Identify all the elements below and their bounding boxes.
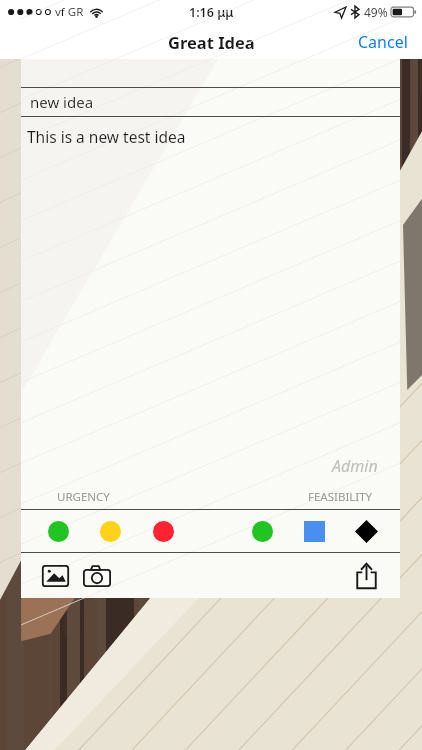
button[interactable]: Take picture <box>77 556 117 596</box>
staticText: Admin <box>332 455 378 477</box>
staticText: URGENCY <box>57 489 110 505</box>
button[interactable]: Add photo <box>35 556 75 596</box>
button[interactable]: Feasibility easy <box>246 515 278 547</box>
staticText: vf GR <box>55 4 84 20</box>
button[interactable]: Share <box>346 556 386 596</box>
button[interactable]: Cancel <box>344 25 422 59</box>
staticText: Cancel <box>358 31 408 53</box>
button[interactable]: Urgency medium <box>94 515 126 547</box>
button[interactable]: Feasibility medium <box>298 515 330 547</box>
staticText: Great Idea <box>168 31 255 53</box>
button[interactable]: new idea <box>21 88 400 116</box>
staticText: new idea <box>30 92 94 112</box>
button[interactable]: Urgency high <box>42 515 74 547</box>
staticText: FEASIBILITY <box>308 489 373 505</box>
button[interactable]: Feasibility hard <box>350 515 382 547</box>
staticText: 49% <box>364 4 388 20</box>
staticText: 1:16 μμ <box>189 4 234 21</box>
button[interactable]: This is a new test idea <box>21 117 400 485</box>
button[interactable]: Urgency low <box>147 515 179 547</box>
staticText: This is a new test idea <box>27 126 186 147</box>
